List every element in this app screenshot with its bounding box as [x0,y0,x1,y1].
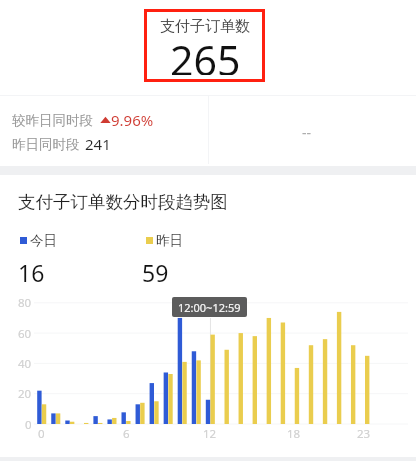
staticText: 60 [18,326,32,342]
staticText: 20 [18,386,32,402]
staticText: 23 [357,426,371,442]
button[interactable]: 今日 [20,232,57,249]
staticText: 40 [18,356,32,372]
staticText: 支付子订单数分时段趋势图 [18,191,228,213]
staticText: 80 [18,295,32,311]
staticText: 59 [142,257,169,288]
button[interactable]: 12:00~12:59 [172,297,247,317]
button[interactable]: 昨日 [146,232,183,249]
staticText: 16 [18,257,45,288]
staticText: 12 [203,426,217,442]
staticText: 6 [123,426,130,442]
staticText: 0 [38,426,45,442]
staticText: 昨日 [156,232,183,249]
staticText: 265 [170,32,241,75]
staticText: 今日 [30,232,57,249]
staticText: 18 [287,426,301,442]
staticText: -- [302,123,312,142]
staticText: 12:00~12:59 [178,300,241,315]
staticText: 支付子订单数 [160,17,250,36]
staticText: 9.96% [111,110,154,130]
button[interactable]: 支付子订单数 [147,12,262,79]
staticText: 0 [25,417,32,433]
staticText: 较昨日同时段 [12,112,93,129]
staticText: 241 [85,134,111,154]
staticText: 昨日同时段 [12,136,80,153]
